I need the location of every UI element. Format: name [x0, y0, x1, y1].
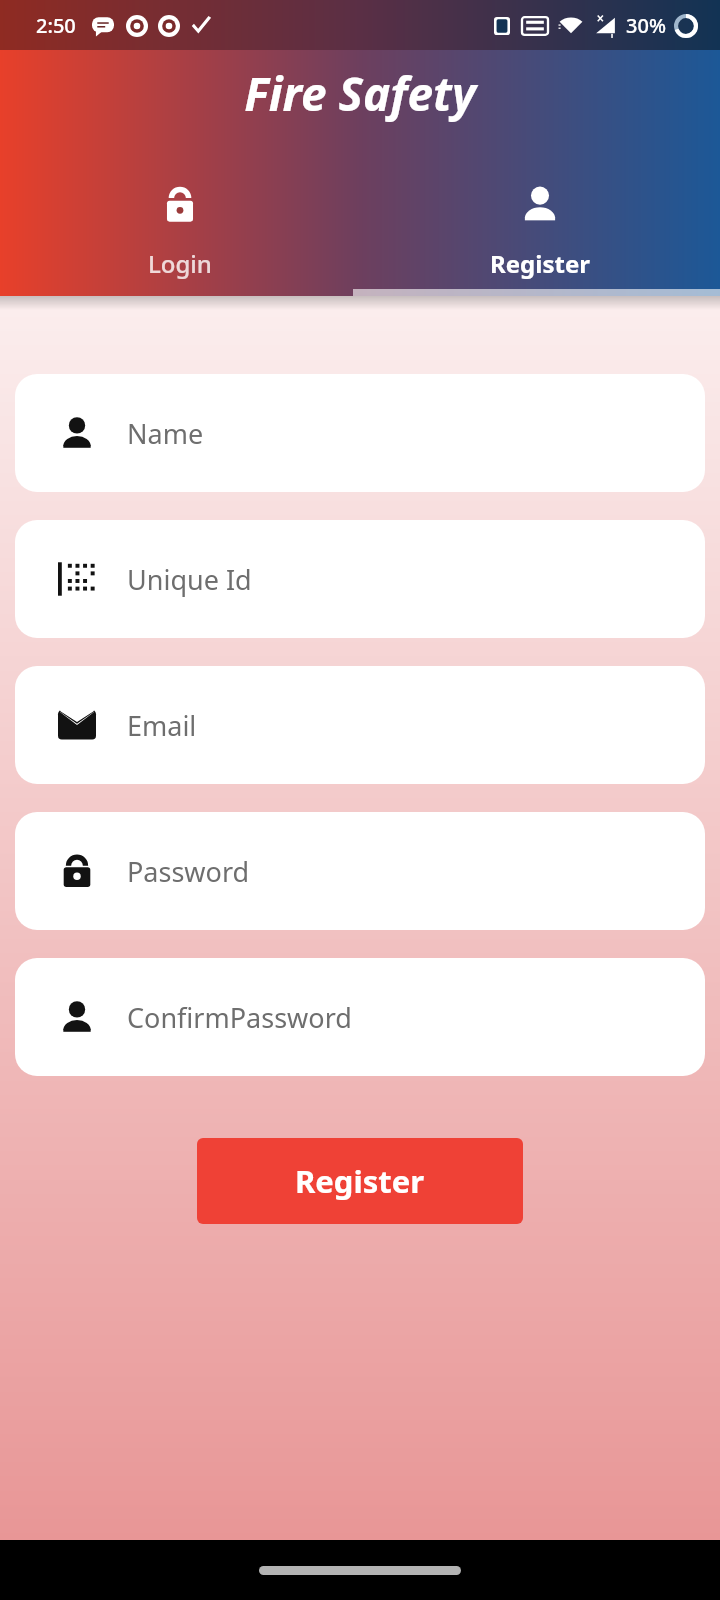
staticText: Name [127, 415, 204, 452]
staticText: 30% [626, 12, 666, 39]
staticText: Unique Id [127, 561, 252, 598]
button[interactable]: Email [15, 666, 705, 784]
button[interactable]: ConfirmPassword [15, 958, 705, 1076]
staticText: Login [148, 247, 212, 280]
staticText: 2:50 [36, 12, 76, 39]
button[interactable]: Name [15, 374, 705, 492]
button[interactable]: Register [360, 166, 720, 296]
button[interactable]: Unique Id [15, 520, 705, 638]
button[interactable]: Login [0, 166, 360, 296]
staticText: Register [490, 247, 590, 280]
staticText: Email [127, 707, 197, 744]
button[interactable]: Password [15, 812, 705, 930]
staticText: ConfirmPassword [127, 999, 352, 1036]
button[interactable]: Register [197, 1138, 523, 1224]
staticText: Password [127, 853, 250, 890]
staticText: Register [295, 1160, 425, 1202]
staticText: Fire Safety [244, 62, 476, 125]
